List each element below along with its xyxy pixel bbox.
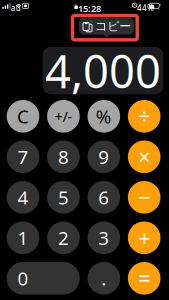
button[interactable]: 4	[7, 181, 39, 214]
staticText: 1	[17, 225, 28, 250]
staticText: +/-	[54, 107, 72, 126]
button[interactable]: 2	[47, 221, 80, 254]
button[interactable]: 7	[7, 140, 39, 173]
staticText: %	[96, 104, 112, 129]
staticText: 5	[58, 185, 69, 210]
button[interactable]: コピー	[79, 18, 134, 34]
button[interactable]: 3	[87, 221, 120, 254]
staticText: +	[138, 224, 150, 252]
staticText: 4,000	[45, 40, 161, 101]
button[interactable]: 6	[87, 181, 120, 214]
staticText: .	[101, 266, 106, 291]
staticText: ×	[138, 143, 150, 171]
staticText: コピー	[95, 19, 131, 33]
button[interactable]: 1	[7, 221, 39, 254]
staticText: au	[11, 3, 21, 13]
staticText: 8	[58, 144, 69, 169]
staticText: 9	[98, 144, 109, 169]
staticText: =	[138, 264, 150, 292]
staticText: 2	[58, 225, 69, 250]
staticText: 4	[17, 185, 28, 210]
button[interactable]: .	[87, 262, 120, 295]
button[interactable]: 8	[47, 140, 80, 173]
button[interactable]: 0	[7, 262, 80, 295]
staticText: 6	[98, 185, 109, 210]
button[interactable]: C	[7, 100, 39, 133]
button[interactable]: 5	[47, 181, 80, 214]
staticText: 44%	[137, 2, 154, 13]
button[interactable]: =	[128, 262, 160, 295]
button[interactable]: +	[128, 221, 160, 254]
button[interactable]: +/-	[47, 100, 80, 133]
button[interactable]: −	[128, 181, 160, 214]
staticText: 15:28	[78, 2, 101, 14]
button[interactable]: %	[87, 100, 120, 133]
staticText: 3	[98, 225, 109, 250]
staticText: C	[17, 104, 29, 129]
button[interactable]: 9	[87, 140, 120, 173]
button[interactable]: ÷	[128, 100, 160, 133]
button[interactable]: ×	[128, 140, 160, 173]
staticText: 0	[17, 266, 28, 291]
staticText: ÷	[138, 102, 150, 130]
staticText: −	[138, 183, 150, 211]
staticText: 7	[17, 144, 28, 169]
